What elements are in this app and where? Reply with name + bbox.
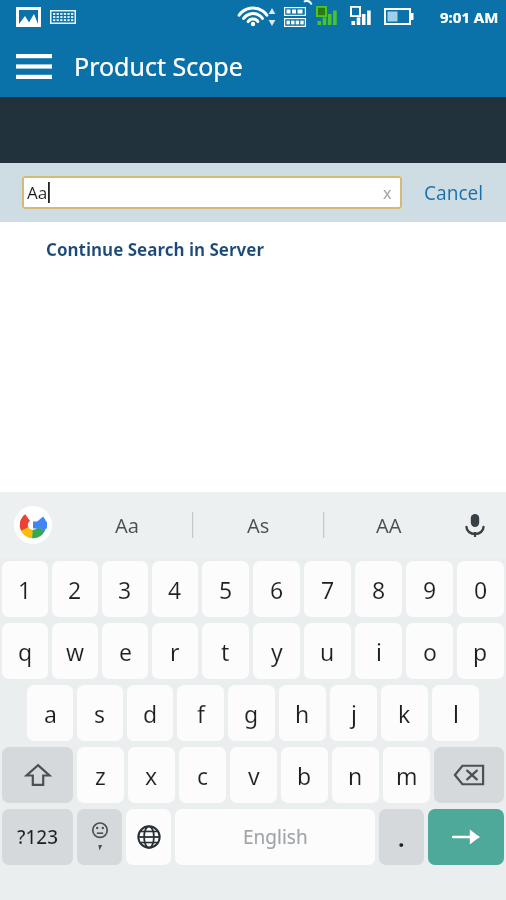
button[interactable]: f: [177, 685, 224, 741]
button[interactable]: Backspace: [434, 747, 504, 803]
button[interactable]: y: [253, 623, 300, 679]
staticText: Aa: [115, 512, 139, 539]
button[interactable]: As: [193, 492, 323, 558]
button[interactable]: l: [432, 685, 479, 741]
button[interactable]: ?123: [2, 809, 73, 865]
button[interactable]: h: [279, 685, 326, 741]
staticText: p: [473, 636, 488, 667]
button[interactable]: Open navigation menu: [8, 40, 60, 92]
staticText: l: [453, 698, 459, 729]
staticText: j: [351, 698, 357, 729]
staticText: e: [119, 636, 132, 667]
staticText: 5: [219, 574, 233, 605]
button[interactable]: Search: [428, 809, 504, 865]
staticText: b: [297, 760, 312, 791]
button[interactable]: p: [457, 623, 504, 679]
staticText: 9: [423, 574, 437, 605]
staticText: 0: [474, 574, 488, 605]
staticText: q: [18, 636, 33, 667]
button[interactable]: 3: [102, 561, 148, 617]
button[interactable]: 0: [457, 561, 504, 617]
staticText: z: [95, 760, 106, 791]
button[interactable]: Google search: [12, 504, 54, 546]
button[interactable]: i: [355, 623, 402, 679]
staticText: 4: [168, 574, 182, 605]
button[interactable]: Aa: [62, 492, 192, 558]
button[interactable]: q: [2, 623, 48, 679]
staticText: Cancel: [424, 180, 484, 206]
button[interactable]: Aa: [22, 176, 402, 209]
staticText: 1: [18, 574, 32, 605]
staticText: 7: [321, 574, 335, 605]
button[interactable]: Voice input: [454, 504, 496, 546]
button[interactable]: d: [127, 685, 173, 741]
staticText: f: [197, 698, 205, 729]
staticText: t: [221, 636, 230, 667]
button[interactable]: 2: [52, 561, 98, 617]
staticText: s: [94, 698, 106, 729]
button[interactable]: m: [383, 747, 430, 803]
staticText: ?123: [17, 824, 59, 850]
staticText: 3: [118, 574, 132, 605]
button[interactable]: Cancel: [402, 163, 506, 222]
staticText: h: [295, 698, 310, 729]
button[interactable]: c: [179, 747, 226, 803]
button[interactable]: v: [230, 747, 277, 803]
button[interactable]: j: [330, 685, 377, 741]
button[interactable]: English: [175, 809, 375, 865]
button[interactable]: u: [304, 623, 351, 679]
staticText: As: [247, 512, 270, 539]
staticText: m: [396, 760, 418, 791]
button[interactable]: z: [77, 747, 124, 803]
staticText: k: [398, 698, 411, 729]
button[interactable]: s: [77, 685, 123, 741]
button[interactable]: Change keyboard language: [126, 809, 171, 865]
staticText: Product Scope: [74, 49, 243, 83]
button[interactable]: t: [202, 623, 249, 679]
button[interactable]: b: [281, 747, 328, 803]
button[interactable]: w: [52, 623, 98, 679]
button[interactable]: g: [228, 685, 275, 741]
staticText: English: [243, 824, 308, 850]
button[interactable]: o: [406, 623, 453, 679]
staticText: o: [423, 636, 437, 667]
staticText: n: [348, 760, 363, 791]
staticText: Aa: [27, 181, 48, 204]
button[interactable]: x: [128, 747, 175, 803]
staticText: w: [66, 636, 85, 667]
staticText: 2: [68, 574, 82, 605]
staticText: i: [376, 636, 382, 667]
staticText: 6: [270, 574, 284, 605]
button[interactable]: r: [152, 623, 198, 679]
staticText: u: [320, 636, 335, 667]
staticText: a: [44, 698, 57, 729]
button[interactable]: 4: [152, 561, 198, 617]
staticText: AA: [376, 512, 402, 539]
button[interactable]: 5: [202, 561, 249, 617]
button[interactable]: Clear search text: [372, 178, 402, 208]
button[interactable]: 1: [2, 561, 48, 617]
staticText: r: [170, 636, 180, 667]
button[interactable]: 8: [355, 561, 402, 617]
staticText: c: [197, 760, 209, 791]
button[interactable]: Shift: [2, 747, 73, 803]
staticText: .: [398, 822, 405, 853]
button[interactable]: 7: [304, 561, 351, 617]
button[interactable]: e: [102, 623, 148, 679]
staticText: g: [244, 698, 259, 729]
button[interactable]: AA: [324, 492, 454, 558]
button[interactable]: .: [379, 809, 424, 865]
button[interactable]: a: [27, 685, 73, 741]
button[interactable]: k: [381, 685, 428, 741]
staticText: x: [383, 182, 392, 204]
staticText: 9:01 AM: [440, 7, 499, 27]
staticText: v: [248, 760, 260, 791]
button[interactable]: Continue Search in Server: [40, 232, 271, 267]
button[interactable]: Emoji and comma: [77, 809, 122, 865]
button[interactable]: 9: [406, 561, 453, 617]
button[interactable]: 6: [253, 561, 300, 617]
staticText: Continue Search in Server: [46, 238, 265, 261]
button[interactable]: n: [332, 747, 379, 803]
staticText: 8: [372, 574, 386, 605]
staticText: d: [143, 698, 158, 729]
